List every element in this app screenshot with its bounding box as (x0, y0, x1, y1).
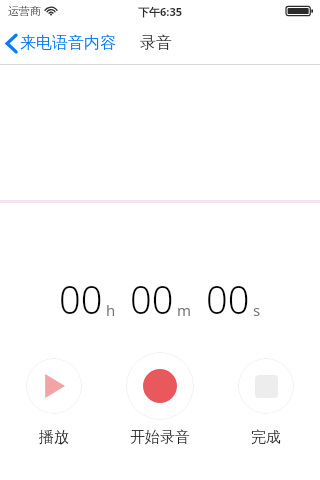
button[interactable]: Done (213, 350, 319, 447)
staticText: 录音 (140, 33, 172, 53)
button[interactable]: Start recording (107, 350, 213, 447)
staticText: 运营商 (8, 4, 41, 18)
staticText: 开始录音 (130, 428, 190, 447)
staticText: h (106, 300, 116, 320)
staticText: 来电语音内容 (20, 33, 116, 53)
staticText: 播放 (39, 428, 69, 447)
staticText: 下午6:35 (138, 4, 182, 19)
staticText: 00 (59, 273, 103, 325)
staticText: 00 (206, 273, 250, 325)
staticText: m (177, 300, 192, 320)
staticText: s (253, 300, 261, 320)
button[interactable]: 来电语音内容 (0, 29, 122, 57)
button[interactable]: Play (1, 350, 107, 447)
staticText: 00 (130, 273, 174, 325)
staticText: 完成 (251, 428, 281, 447)
